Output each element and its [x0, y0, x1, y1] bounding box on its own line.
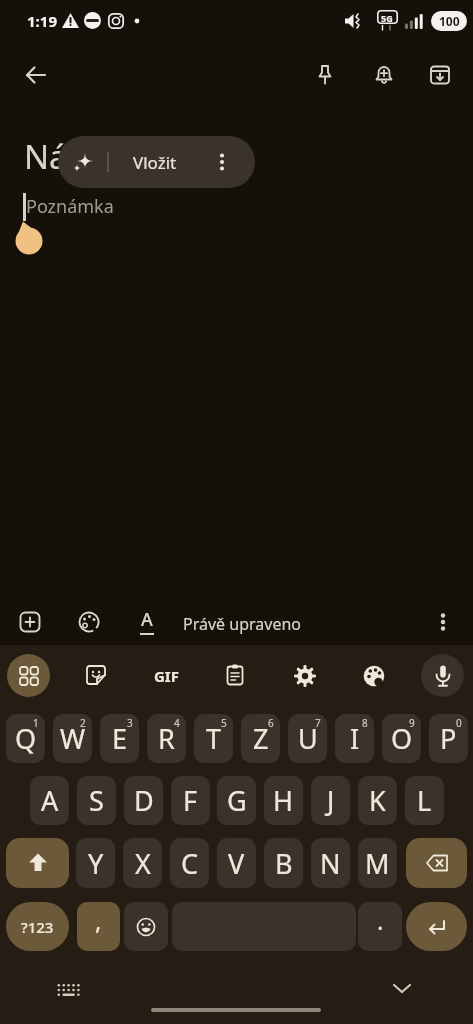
button[interactable] [421, 600, 465, 644]
button[interactable]: K [358, 776, 397, 825]
staticText: 8 [362, 716, 368, 730]
button[interactable]: W [53, 714, 92, 763]
button[interactable]: ?123 [6, 902, 69, 951]
staticText: R [158, 720, 175, 757]
button[interactable]: V [217, 838, 256, 888]
button[interactable]: U [288, 714, 327, 763]
staticText: 6 [268, 716, 274, 730]
staticText: V [228, 845, 245, 882]
staticText: J [327, 782, 335, 819]
staticText: 3 [127, 716, 133, 730]
staticText: B [275, 845, 293, 882]
button[interactable] [75, 654, 119, 697]
button[interactable] [283, 654, 327, 697]
staticText: K [369, 782, 386, 819]
button[interactable] [62, 140, 106, 184]
button[interactable]: L [405, 776, 444, 825]
button[interactable]: Vložit [112, 136, 198, 188]
button[interactable] [200, 140, 244, 184]
staticText: O [391, 720, 413, 757]
staticText: 9 [409, 716, 415, 730]
staticText: 5 [221, 716, 227, 730]
button[interactable]: Q [6, 714, 45, 763]
button[interactable]: E [100, 714, 139, 763]
button[interactable]: R [147, 714, 186, 763]
staticText: . [377, 904, 384, 937]
button[interactable] [47, 966, 91, 1010]
button[interactable]: C [170, 838, 209, 888]
staticText: A [141, 607, 153, 632]
staticText: W [60, 720, 86, 757]
button[interactable]: , [77, 902, 120, 951]
button[interactable]: Y [76, 838, 115, 888]
staticText: GIF [154, 666, 179, 686]
button[interactable]: I [335, 714, 374, 763]
button[interactable]: Z [241, 714, 280, 763]
button[interactable] [67, 600, 111, 644]
button[interactable] [360, 51, 408, 99]
staticText: 1 [33, 716, 39, 730]
button[interactable]: GIF [144, 654, 188, 697]
staticText: 100 [439, 13, 460, 29]
button[interactable]: H [264, 776, 303, 825]
staticText: Z [253, 720, 269, 757]
staticText: D [134, 782, 154, 819]
button[interactable]: P [429, 714, 468, 763]
staticText: Ná [24, 134, 68, 179]
staticText: ?123 [21, 917, 54, 937]
button[interactable] [352, 654, 396, 697]
button[interactable]: A [30, 776, 69, 825]
staticText: X [135, 845, 151, 882]
button[interactable]: . [358, 902, 402, 951]
staticText: 2 [80, 716, 86, 730]
button[interactable]: X [123, 838, 162, 888]
staticText: Y [88, 845, 104, 882]
button[interactable]: J [311, 776, 350, 825]
button[interactable] [406, 902, 467, 951]
staticText: F [183, 782, 198, 819]
staticText: Právě upraveno [183, 613, 301, 635]
button[interactable]: N [311, 838, 350, 888]
button[interactable] [214, 654, 258, 697]
staticText: Vložit [133, 151, 177, 174]
staticText: T [206, 720, 222, 757]
button[interactable]: A [125, 600, 169, 644]
staticText: 7 [315, 716, 321, 730]
staticText: S [89, 782, 104, 819]
staticText: H [273, 782, 294, 819]
button[interactable]: B [264, 838, 303, 888]
button[interactable] [416, 51, 464, 99]
button[interactable] [380, 966, 424, 1010]
staticText: Q [15, 720, 37, 757]
button[interactable] [7, 654, 50, 697]
staticText: U [298, 720, 318, 757]
button[interactable]: F [171, 776, 210, 825]
staticText: A [41, 782, 59, 819]
button[interactable] [301, 51, 349, 99]
staticText: 5G [381, 12, 393, 24]
button[interactable]: M [358, 838, 397, 888]
staticText: E [112, 720, 128, 757]
staticText: Poznámka [26, 194, 114, 219]
staticText: 4 [174, 716, 180, 730]
staticText: , [95, 904, 102, 937]
button[interactable] [406, 838, 467, 888]
staticText: L [417, 782, 432, 819]
staticText: G [227, 782, 247, 819]
button[interactable] [12, 51, 60, 99]
staticText: N [320, 845, 341, 882]
button[interactable]: D [124, 776, 163, 825]
button[interactable] [6, 838, 69, 888]
button[interactable] [124, 902, 168, 951]
staticText: M [365, 845, 390, 882]
button[interactable]: G [217, 776, 256, 825]
button[interactable] [8, 600, 52, 644]
button[interactable] [421, 654, 464, 697]
staticText: 0 [456, 716, 462, 730]
staticText: 1:19 [27, 11, 57, 31]
button[interactable]: T [194, 714, 233, 763]
staticText: C [181, 845, 199, 882]
button[interactable]: O [382, 714, 421, 763]
button[interactable]: S [77, 776, 116, 825]
